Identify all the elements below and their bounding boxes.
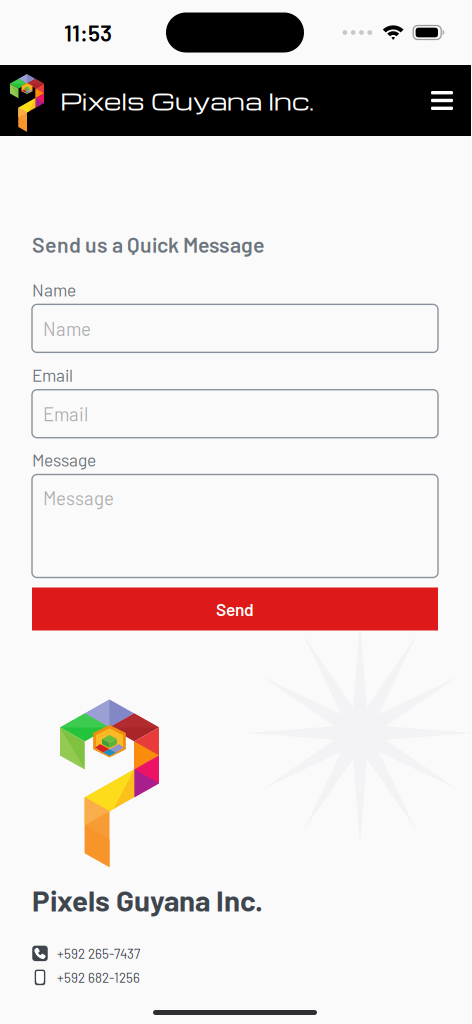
- button[interactable]: Menu: [419, 77, 465, 123]
- staticText: Send us a Quick Message: [32, 231, 265, 257]
- staticText: Send: [216, 599, 254, 619]
- staticText: Name: [32, 279, 76, 300]
- staticText: Email: [32, 364, 73, 385]
- button[interactable]: Message: [32, 474, 438, 577]
- staticText: Message: [43, 486, 114, 509]
- staticText: +592 682-1256: [57, 969, 140, 985]
- button[interactable]: Send: [32, 587, 438, 630]
- staticText: +592 265-7437: [57, 945, 140, 961]
- staticText: Message: [32, 449, 96, 470]
- staticText: Name: [43, 317, 91, 340]
- staticText: 11:53: [64, 19, 112, 46]
- button[interactable]: Name: [32, 304, 438, 352]
- staticText: Pixels Guyana Inc.: [60, 84, 314, 117]
- button[interactable]: Email: [32, 390, 438, 438]
- staticText: Email: [43, 403, 88, 425]
- staticText: Pixels Guyana Inc.: [32, 882, 263, 917]
